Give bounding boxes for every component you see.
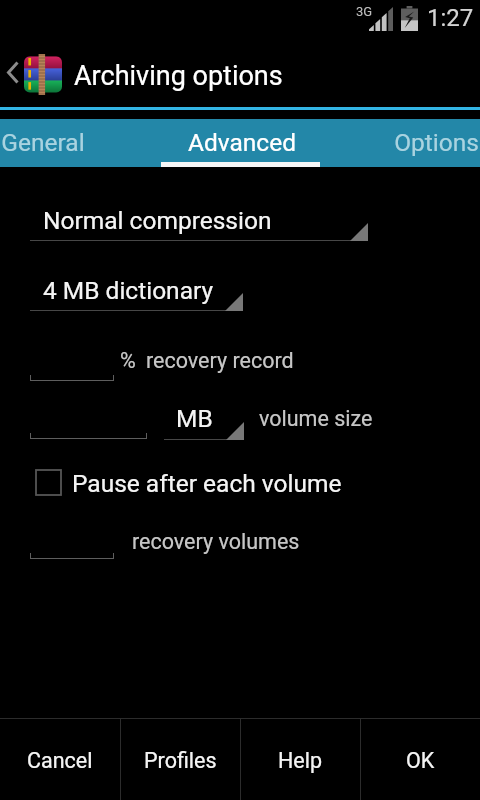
staticText: recovery volumes [132, 529, 300, 554]
staticText: General [1, 128, 85, 157]
staticText: 4 MB dictionary [43, 276, 214, 305]
button[interactable]: Profiles [121, 719, 240, 800]
staticText: 1:27 [427, 4, 474, 32]
button[interactable] [30, 404, 147, 439]
button[interactable]: Advanced tab [161, 119, 320, 167]
staticText: recovery record [146, 348, 294, 373]
staticText: OK [406, 748, 435, 773]
staticText: Advanced [188, 128, 296, 157]
staticText: Normal compression [43, 206, 272, 235]
staticText: Options [394, 128, 479, 157]
button[interactable]: 4 MB dictionary [30, 271, 243, 311]
button[interactable]: Cancel [0, 719, 120, 800]
staticText: % [120, 348, 136, 373]
button[interactable]: Options tab [320, 119, 479, 167]
button[interactable] [30, 524, 114, 559]
staticText: Cancel [27, 748, 93, 773]
staticText: Profiles [144, 748, 217, 773]
button[interactable]: General tab [0, 119, 43, 167]
button[interactable] [30, 346, 114, 381]
staticText: Archiving options [74, 60, 283, 92]
staticText: volume size [259, 406, 373, 431]
button[interactable]: Pause after each volume [30, 463, 350, 502]
staticText: MB [176, 404, 213, 433]
button[interactable]: Normal compression [30, 201, 368, 241]
staticText: 3G [356, 4, 373, 19]
button[interactable]: Navigate up [0, 38, 26, 107]
staticText: Help [278, 748, 323, 773]
button[interactable]: MB [164, 400, 244, 440]
button[interactable]: OK [361, 719, 480, 800]
button[interactable]: Help [241, 719, 360, 800]
staticText: Pause after each volume [72, 469, 342, 498]
